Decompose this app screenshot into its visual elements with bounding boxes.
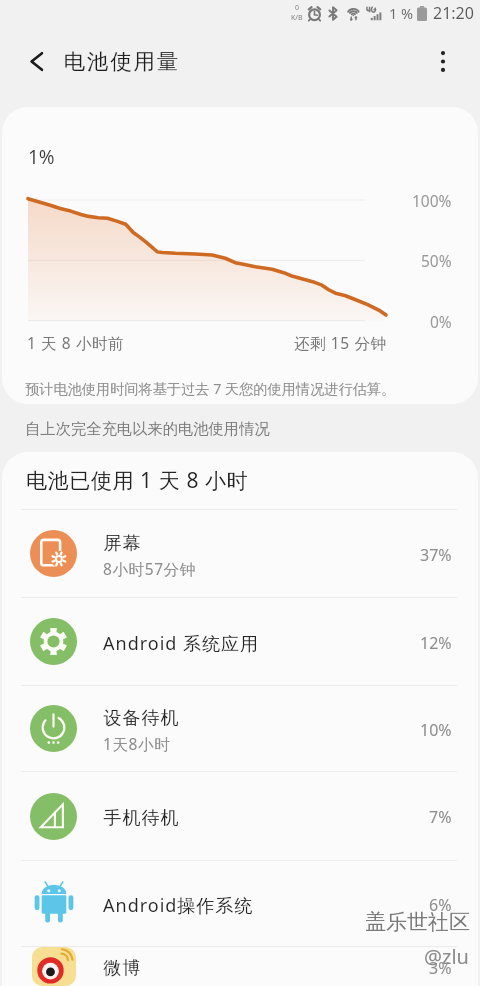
staticText: 电池使用量 [63,48,179,75]
staticText: 50% [421,250,452,270]
staticText: 8小时57分钟 [103,558,196,579]
staticText: Android操作系统 [103,893,254,918]
button[interactable]: Android操作系统 [2,861,478,946]
staticText: 37% [420,544,452,566]
staticText: Android 系统应用 [103,631,260,656]
button[interactable]: 设备待机 [2,686,478,771]
button[interactable]: More options [415,33,471,89]
staticText: 1 % [389,3,414,23]
staticText: 0% [430,311,452,331]
staticText: @zlu [424,943,469,969]
staticText: 还剩 15 分钟 [294,332,387,353]
staticText: K/B [291,13,303,23]
staticText: 屏幕 [103,532,141,555]
staticText: 10% [420,719,452,741]
staticText: 7% [429,806,452,828]
staticText: 预计电池使用时间将基于过去 7 天您的使用情况进行估算。 [25,379,396,398]
staticText: 3% [429,957,452,979]
staticText: 电池已使用 1 天 8 小时 [26,466,249,495]
staticText: 手机待机 [103,807,179,830]
staticText: 6% [429,894,452,916]
staticText: 1% [28,144,55,170]
staticText: 21:20 [433,2,474,24]
staticText: 100% [412,190,452,210]
button[interactable]: 手机待机 [2,772,478,860]
button[interactable]: Android 系统应用 [2,598,478,685]
staticText: 盖乐世社区 [365,909,470,935]
button[interactable]: 微博 [2,947,478,986]
button[interactable]: Back [8,33,64,89]
staticText: 微博 [103,957,141,980]
staticText: 设备待机 [103,707,179,730]
staticText: 1天8小时 [103,733,171,754]
staticText: 1 天 8 小时前 [27,332,125,353]
button[interactable]: 屏幕 [2,510,478,597]
staticText: 0 [295,3,300,13]
staticText: 12% [420,632,452,654]
staticText: 自上次完全充电以来的电池使用情况 [25,419,270,438]
